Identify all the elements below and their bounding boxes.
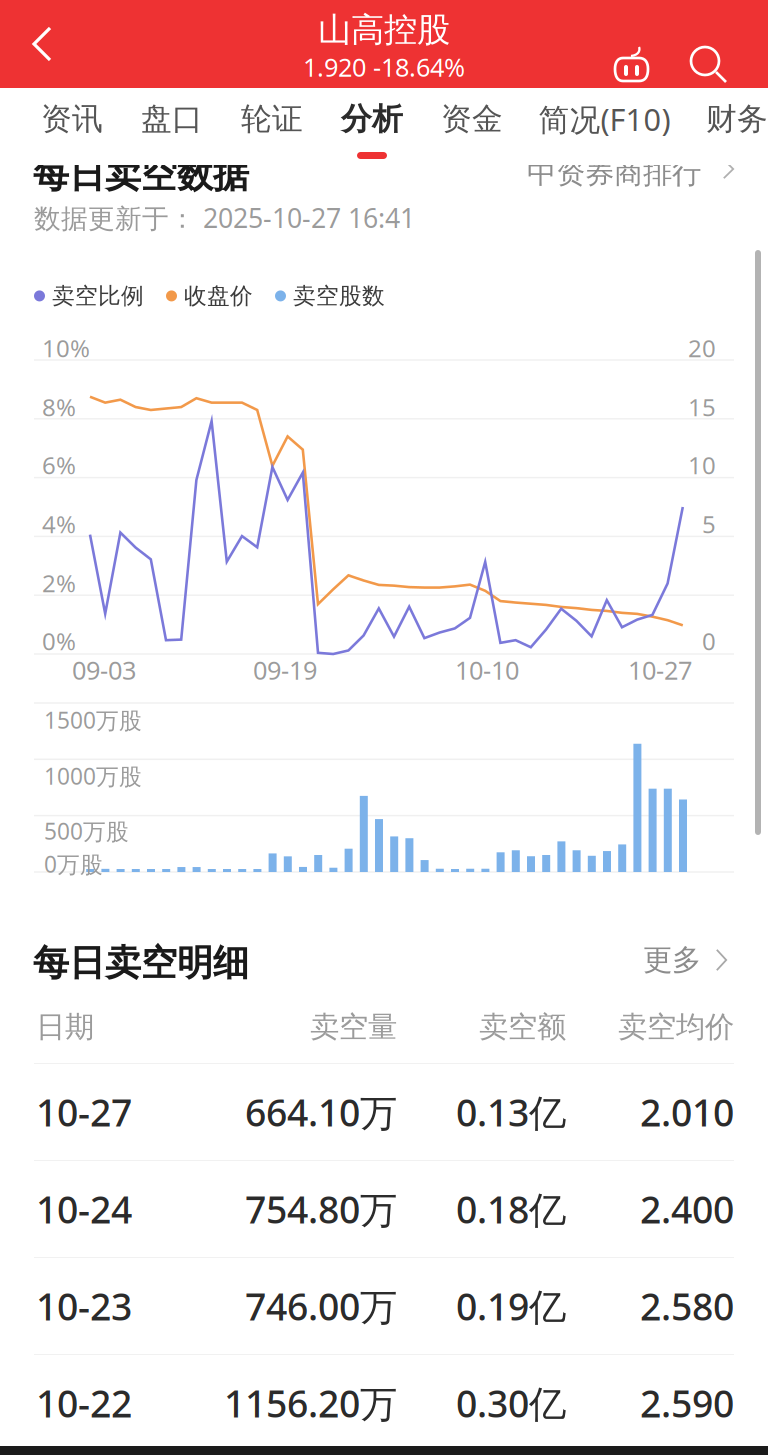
- staticText: 卖空均价: [618, 1009, 734, 1045]
- staticText: 数据更新于： 2025-10-27 16:41: [34, 200, 415, 235]
- staticText: 09-03: [72, 653, 136, 687]
- button[interactable]: 10-23: [0, 1258, 768, 1354]
- staticText: 1000万股: [44, 761, 142, 791]
- button[interactable]: Back: [0, 0, 84, 88]
- staticText: 0.19亿: [456, 1281, 566, 1331]
- staticText: 0%: [42, 625, 76, 657]
- staticText: 15: [688, 391, 716, 423]
- button[interactable]: 更多: [608, 935, 728, 985]
- staticText: 10-27: [628, 653, 692, 687]
- button[interactable]: AI assistant: [610, 21, 656, 109]
- staticText: 财务: [706, 100, 768, 138]
- staticText: 盘口: [141, 100, 203, 138]
- staticText: 746.00万: [245, 1281, 397, 1331]
- staticText: 0.13亿: [456, 1087, 566, 1137]
- staticText: 简况(F10): [538, 99, 670, 139]
- button[interactable]: 10-22: [0, 1355, 768, 1451]
- staticText: 资讯: [41, 100, 103, 138]
- staticText: 2.400: [640, 1184, 734, 1234]
- staticText: 中资券商排行: [527, 155, 701, 191]
- button[interactable]: Search: [690, 23, 732, 111]
- staticText: 资金: [441, 100, 503, 138]
- staticText: 卖空量: [310, 1009, 397, 1045]
- staticText: 卖空额: [479, 1009, 566, 1045]
- staticText: 卖空比例: [52, 282, 144, 310]
- staticText: 0.18亿: [456, 1184, 566, 1234]
- staticText: 山高控股: [318, 9, 450, 50]
- staticText: 轮证: [241, 100, 303, 138]
- staticText: 每日卖空数据: [33, 153, 249, 197]
- staticText: 2.580: [640, 1281, 734, 1331]
- staticText: 收盘价: [184, 282, 253, 310]
- staticText: 5: [702, 508, 716, 540]
- staticText: 664.10万: [245, 1087, 397, 1137]
- staticText: 10: [688, 449, 716, 481]
- staticText: 09-19: [253, 653, 317, 687]
- button[interactable]: 10-27: [0, 1064, 768, 1160]
- button[interactable]: 财务: [687, 88, 768, 165]
- staticText: 1.920 -18.64%: [303, 50, 465, 84]
- button[interactable]: 资讯: [22, 88, 122, 165]
- staticText: 10%: [42, 332, 90, 364]
- button[interactable]: 10-24: [0, 1161, 768, 1257]
- staticText: 分析: [341, 100, 403, 138]
- staticText: 8%: [42, 391, 76, 423]
- staticText: 1156.20万: [224, 1378, 397, 1428]
- staticText: 日期: [36, 1009, 94, 1045]
- button[interactable]: 轮证: [222, 88, 322, 165]
- staticText: 卖空股数: [293, 282, 385, 310]
- staticText: 4%: [42, 508, 76, 540]
- staticText: 2.590: [640, 1378, 734, 1428]
- staticText: 0.30亿: [456, 1378, 566, 1428]
- staticText: 10-24: [36, 1184, 132, 1234]
- staticText: 2.010: [640, 1087, 734, 1137]
- staticText: 0万股: [44, 849, 103, 879]
- staticText: 10-22: [36, 1378, 132, 1428]
- button[interactable]: 分析: [322, 88, 422, 165]
- staticText: 2%: [42, 567, 76, 599]
- staticText: 6%: [42, 449, 76, 481]
- staticText: 10-10: [455, 653, 519, 687]
- staticText: 754.80万: [245, 1184, 397, 1234]
- staticText: 0: [702, 625, 716, 657]
- staticText: 1500万股: [44, 705, 142, 735]
- button[interactable]: 资金: [422, 88, 522, 165]
- staticText: 500万股: [44, 816, 129, 846]
- staticText: 10-27: [36, 1087, 132, 1137]
- button[interactable]: 盘口: [122, 88, 222, 165]
- staticText: 10-23: [36, 1281, 132, 1331]
- staticText: 更多: [643, 942, 701, 978]
- staticText: 每日卖空明细: [33, 941, 249, 985]
- button[interactable]: 简况(F10): [522, 88, 687, 165]
- staticText: 20: [688, 332, 716, 364]
